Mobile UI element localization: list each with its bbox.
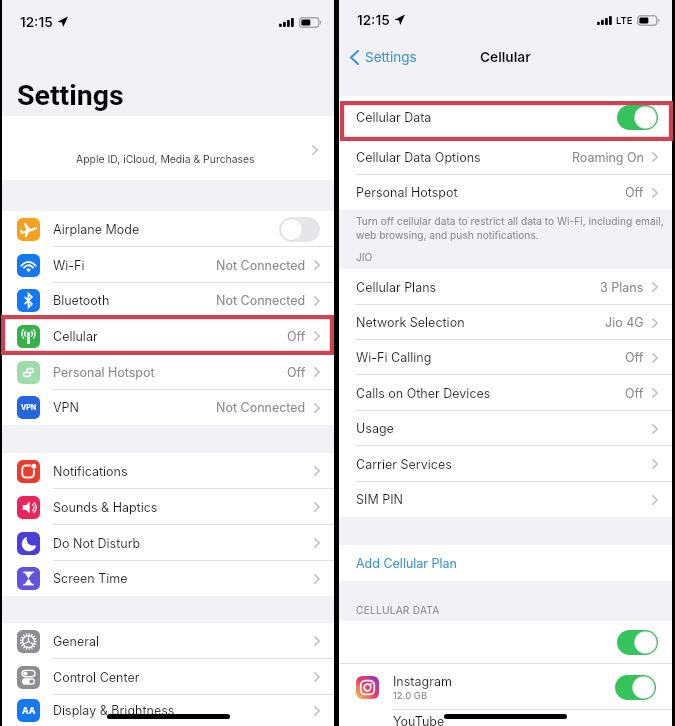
staticText: Wi-Fi	[53, 258, 85, 273]
button[interactable]: Wi-Fi Calling	[339, 340, 672, 375]
button[interactable]: Calls on Other Devices	[339, 375, 672, 411]
staticText: JIO	[356, 251, 373, 263]
button[interactable]: Cellular Data	[339, 96, 672, 139]
staticText: Off	[625, 185, 644, 200]
button[interactable]: Do Not Disturb	[2, 525, 334, 561]
staticText: Turn off cellular data to restrict all d…	[356, 215, 664, 241]
staticText: Screen Time	[53, 571, 128, 586]
staticText: LTE	[616, 15, 633, 26]
staticText: 3 Plans	[600, 280, 644, 295]
staticText: Not Connected	[216, 400, 306, 415]
staticText: Settings	[17, 79, 124, 112]
staticText: Off	[625, 386, 644, 401]
staticText: Not Connected	[216, 293, 306, 308]
button[interactable]: Cellular Plans	[339, 269, 672, 305]
staticText: Carrier Services	[356, 457, 452, 472]
staticText: Bluetooth	[53, 293, 110, 308]
button[interactable]: VPN	[2, 390, 334, 425]
button[interactable]: Airplane Mode	[2, 211, 334, 247]
staticText: CELLULAR DATA	[356, 604, 440, 616]
button[interactable]: Apple ID, iCloud, Media & Purchases	[2, 116, 334, 180]
staticText: Do Not Disturb	[53, 536, 141, 551]
staticText: Network Selection	[356, 315, 465, 330]
button[interactable]: Bluetooth	[2, 283, 334, 318]
button[interactable]: Wi-Fi	[2, 247, 334, 283]
staticText: General	[53, 634, 100, 649]
staticText: VPN	[21, 403, 37, 412]
staticText: SIM PIN	[356, 492, 403, 507]
button[interactable]: Instagram	[339, 664, 672, 710]
staticText: Cellular	[480, 49, 531, 66]
button[interactable]: AA	[2, 695, 334, 726]
button[interactable]: Cellular Data Options	[339, 139, 672, 175]
staticText: Off	[287, 329, 306, 344]
button[interactable]: Settings	[350, 49, 417, 65]
staticText: Calls on Other Devices	[356, 386, 491, 401]
staticText: 12.0 GB	[393, 690, 428, 701]
staticText: Off	[625, 350, 644, 365]
staticText: 12:15	[357, 12, 390, 28]
staticText: Personal Hotspot	[53, 365, 155, 380]
staticText: Cellular Data	[356, 110, 432, 125]
staticText: Personal Hotspot	[356, 185, 458, 200]
staticText: AA	[22, 705, 36, 716]
staticText: Control Center	[53, 670, 140, 685]
button[interactable]: Notifications	[2, 453, 334, 489]
staticText: 12:15	[20, 14, 53, 30]
staticText: Airplane Mode	[53, 222, 140, 237]
staticText: VPN	[53, 400, 80, 415]
button[interactable]: Usage	[339, 411, 672, 446]
staticText: Sounds & Haptics	[53, 500, 158, 515]
staticText: Display & Brightness	[53, 703, 175, 718]
staticText: Off	[287, 365, 306, 380]
button[interactable]: Control Center	[2, 659, 334, 695]
staticText: Wi-Fi Calling	[356, 350, 432, 365]
button[interactable]: Personal Hotspot	[339, 175, 672, 210]
staticText: Usage	[356, 421, 394, 436]
staticText: Settings	[365, 49, 417, 65]
staticText: Cellular Data Options	[356, 150, 481, 165]
staticText: Not Connected	[216, 258, 306, 273]
staticText: Cellular	[53, 329, 98, 344]
staticText: Roaming On	[572, 150, 644, 165]
staticText: Jio 4G	[605, 315, 644, 330]
button[interactable]: Carrier Services	[339, 446, 672, 482]
button[interactable]: Sounds & Haptics	[2, 489, 334, 525]
staticText: Notifications	[53, 464, 128, 479]
staticText: Apple ID, iCloud, Media & Purchases	[76, 153, 255, 166]
button[interactable]	[339, 621, 672, 664]
button[interactable]: Add Cellular Plan	[339, 545, 672, 581]
staticText: Add Cellular Plan	[356, 556, 457, 571]
staticText: YouTube	[393, 714, 445, 726]
button[interactable]: SIM PIN	[339, 482, 672, 517]
staticText: Cellular Plans	[356, 280, 437, 295]
button[interactable]: General	[2, 623, 334, 659]
staticText: Instagram	[393, 674, 452, 689]
button[interactable]: Network Selection	[339, 305, 672, 340]
button[interactable]: Cellular	[2, 318, 334, 354]
button[interactable]: Personal Hotspot	[2, 354, 334, 390]
button[interactable]: Screen Time	[2, 561, 334, 596]
